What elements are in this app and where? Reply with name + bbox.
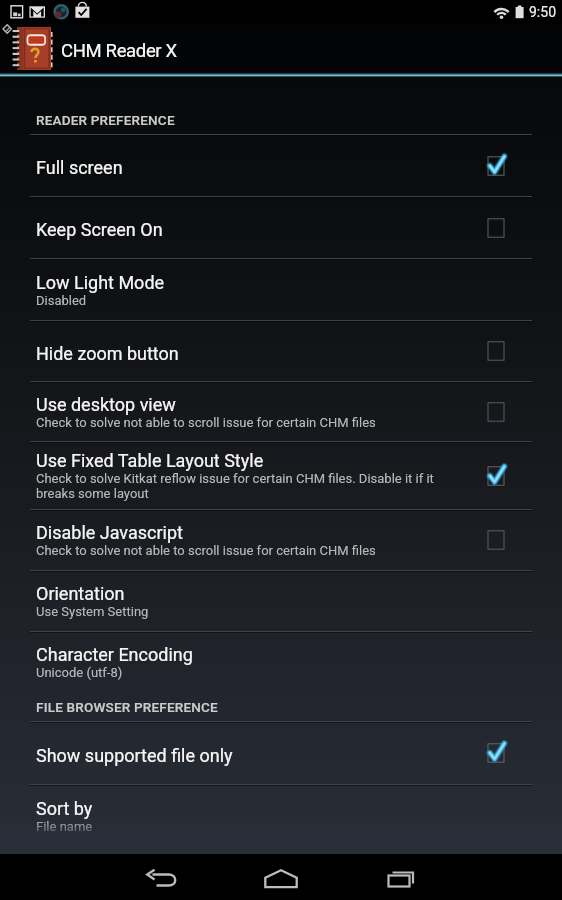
button[interactable]: Full screen	[0, 135, 562, 197]
staticText: READER PREFERENCE	[36, 112, 175, 128]
button[interactable]: Sort by	[0, 785, 562, 847]
staticText: Unicode (utf-8)	[36, 665, 123, 680]
staticText: CHM Reader X	[61, 40, 177, 62]
button[interactable]: Show supported file only	[0, 722, 562, 785]
button[interactable]: Use Fixed Table Layout Style	[0, 442, 562, 510]
button[interactable]: Hide zoom button	[0, 321, 562, 382]
button[interactable]: Home	[243, 856, 319, 900]
button[interactable]: Unchecked	[479, 334, 513, 368]
button[interactable]: Recent apps	[364, 856, 440, 900]
button[interactable]: Keep Screen On	[0, 197, 562, 259]
staticText: Hide zoom button	[36, 343, 179, 364]
staticText: FILE BROWSER PREFERENCE	[36, 699, 218, 715]
staticText: Sort by	[36, 798, 93, 819]
button[interactable]: Character Encoding	[0, 632, 562, 691]
staticText: Use System Setting	[36, 604, 149, 619]
staticText: Low Light Mode	[36, 272, 165, 293]
staticText: Show supported file only	[36, 745, 233, 766]
staticText: Keep Screen On	[36, 219, 163, 240]
button[interactable]: Disable Javascript	[0, 510, 562, 571]
staticText: Full screen	[36, 157, 123, 178]
button[interactable]: Back	[124, 856, 200, 900]
button[interactable]: Use desktop view	[0, 382, 562, 442]
staticText: Use desktop view	[36, 394, 176, 415]
staticText: Use Fixed Table Layout Style	[36, 450, 264, 471]
button[interactable]: Low Light Mode	[0, 259, 562, 321]
staticText: Check to solve not able to scroll issue …	[36, 543, 376, 558]
staticText: 9:50	[529, 4, 556, 20]
staticText: Disabled	[36, 293, 87, 308]
button[interactable]: Checked	[479, 149, 513, 183]
staticText: Character Encoding	[36, 644, 193, 665]
button[interactable]: Unchecked	[479, 395, 513, 429]
button[interactable]: Unchecked	[479, 211, 513, 245]
staticText: File name	[36, 819, 93, 834]
button[interactable]: Navigate up	[0, 24, 61, 77]
button[interactable]: Checked	[479, 459, 513, 493]
button[interactable]: Unchecked	[479, 523, 513, 557]
staticText: Check to solve not able to scroll issue …	[36, 415, 376, 430]
staticText: Check to solve Kitkat reflow issue for c…	[36, 471, 456, 501]
staticText: Orientation	[36, 583, 125, 604]
button[interactable]: Orientation	[0, 571, 562, 632]
button[interactable]: Checked	[479, 736, 513, 770]
staticText: Disable Javascript	[36, 522, 183, 543]
